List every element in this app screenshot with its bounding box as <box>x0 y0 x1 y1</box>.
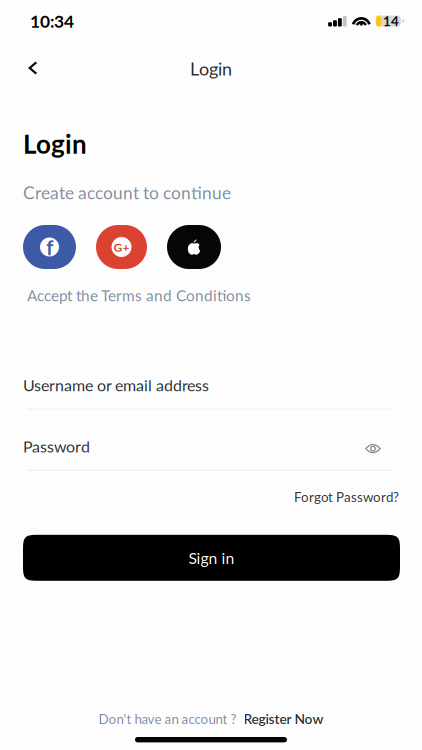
staticText: Register Now <box>243 710 323 727</box>
staticText: G+ <box>113 240 129 254</box>
staticText: Login <box>23 128 87 159</box>
staticText: Create account to continue <box>23 182 231 203</box>
staticText: 10:34 <box>30 11 74 31</box>
staticText: Accept the Terms and Conditions <box>27 286 251 304</box>
staticText: Sign in <box>188 548 234 567</box>
button[interactable]: Forgot Password? <box>294 489 400 505</box>
button[interactable]: Show password <box>365 437 400 455</box>
staticText: Username or email address <box>23 375 209 395</box>
button[interactable]: Continue with Google <box>96 225 147 269</box>
button[interactable]: Continue with Apple <box>167 225 221 269</box>
staticText: Password <box>23 437 90 456</box>
staticText: Don't have an account ? <box>98 711 236 727</box>
staticText: 14 <box>383 13 399 29</box>
button[interactable]: Accept the Terms and Conditions <box>23 286 251 304</box>
button[interactable]: Continue with Facebook <box>23 225 76 269</box>
staticText: f <box>46 235 53 259</box>
staticText: Login <box>190 58 232 79</box>
button[interactable]: Back <box>13 40 53 88</box>
button[interactable]: Sign in <box>23 535 400 581</box>
button[interactable]: Register Now <box>243 710 323 727</box>
staticText: Forgot Password? <box>294 489 399 505</box>
